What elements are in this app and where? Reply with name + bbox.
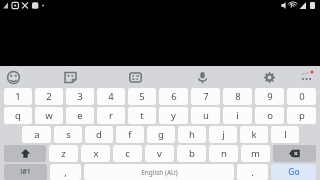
staticText: , — [64, 166, 67, 179]
button[interactable]: k — [240, 126, 268, 143]
button[interactable]: 0 — [287, 88, 316, 105]
button[interactable]: m — [241, 145, 270, 162]
staticText: 7 — [203, 90, 209, 103]
staticText: q — [15, 109, 21, 122]
button[interactable]: q — [4, 107, 32, 124]
staticText: x — [93, 147, 99, 160]
staticText: z — [61, 147, 66, 160]
button[interactable]: x — [81, 145, 110, 162]
button[interactable]: 2 — [35, 88, 63, 105]
staticText: 2 — [46, 90, 52, 103]
button[interactable]: a — [22, 126, 51, 143]
button[interactable]: w — [35, 107, 63, 124]
button[interactable]: l — [271, 126, 299, 143]
button[interactable]: j — [209, 126, 237, 143]
staticText: i — [236, 109, 239, 122]
staticText: j — [222, 128, 225, 141]
staticText: English (AU) — [141, 168, 178, 177]
staticText: r — [109, 109, 113, 122]
button[interactable]: p — [287, 107, 316, 124]
button[interactable]: f — [116, 126, 144, 143]
staticText: 6 — [171, 90, 177, 103]
button[interactable]: 5 — [128, 88, 156, 105]
staticText: 5 — [139, 90, 145, 103]
button[interactable]: Settings — [259, 67, 279, 87]
button[interactable]: e — [66, 107, 94, 124]
staticText: a — [34, 128, 40, 141]
staticText: b — [189, 147, 195, 160]
staticText: . — [251, 166, 254, 179]
button[interactable]: !#1 — [4, 164, 47, 180]
button[interactable]: o — [255, 107, 284, 124]
staticText: v — [157, 147, 162, 160]
button[interactable]: s — [54, 126, 82, 143]
button[interactable]: z — [49, 145, 78, 162]
staticText: d — [96, 128, 102, 141]
staticText: f — [128, 128, 132, 141]
button[interactable]: 9 — [255, 88, 284, 105]
staticText: m — [251, 147, 260, 160]
button[interactable]: . — [237, 164, 268, 180]
button[interactable]: Shift — [4, 145, 46, 162]
button[interactable]: u — [191, 107, 220, 124]
button[interactable]: GIF — [125, 67, 145, 87]
button[interactable]: h — [178, 126, 206, 143]
button[interactable]: Go — [271, 164, 316, 180]
button[interactable]: i — [223, 107, 252, 124]
button[interactable]: 1 — [4, 88, 32, 105]
button[interactable]: r — [97, 107, 125, 124]
button[interactable]: , — [50, 164, 81, 180]
button[interactable]: Backspace — [273, 145, 316, 162]
staticText: 3 — [77, 90, 83, 103]
button[interactable]: d — [85, 126, 113, 143]
button[interactable]: c — [113, 145, 142, 162]
staticText: k — [251, 128, 257, 141]
staticText: h — [189, 128, 195, 141]
staticText: 0 — [299, 90, 305, 103]
button[interactable]: 6 — [159, 88, 188, 105]
button[interactable]: Stickers — [60, 67, 80, 87]
staticText: !#1 — [20, 167, 31, 177]
staticText: y — [171, 109, 176, 122]
button[interactable]: g — [147, 126, 175, 143]
button[interactable]: Voice input — [192, 67, 212, 87]
staticText: p — [299, 109, 305, 122]
staticText: w — [45, 109, 53, 122]
button[interactable]: 8 — [223, 88, 252, 105]
button[interactable]: y — [159, 107, 188, 124]
staticText: Go — [288, 166, 300, 178]
staticText: e — [77, 109, 83, 122]
staticText: l — [284, 128, 287, 141]
button[interactable]: t — [128, 107, 156, 124]
staticText: 9 — [267, 90, 273, 103]
button[interactable]: More options — [296, 67, 316, 87]
staticText: 1 — [15, 90, 21, 103]
staticText: n — [221, 147, 227, 160]
button[interactable]: 4 — [97, 88, 125, 105]
button[interactable]: v — [145, 145, 174, 162]
button[interactable]: b — [177, 145, 206, 162]
staticText: u — [203, 109, 209, 122]
button[interactable]: 7 — [191, 88, 220, 105]
staticText: 4 — [108, 90, 114, 103]
staticText: c — [125, 147, 130, 160]
staticText: o — [267, 109, 273, 122]
button[interactable]: n — [209, 145, 238, 162]
button[interactable]: English (AU) — [84, 164, 234, 180]
staticText: g — [158, 128, 164, 141]
staticText: s — [66, 128, 71, 141]
button[interactable]: Emoji — [3, 67, 23, 87]
staticText: 8 — [235, 90, 241, 103]
button[interactable]: 3 — [66, 88, 94, 105]
staticText: t — [140, 109, 144, 122]
